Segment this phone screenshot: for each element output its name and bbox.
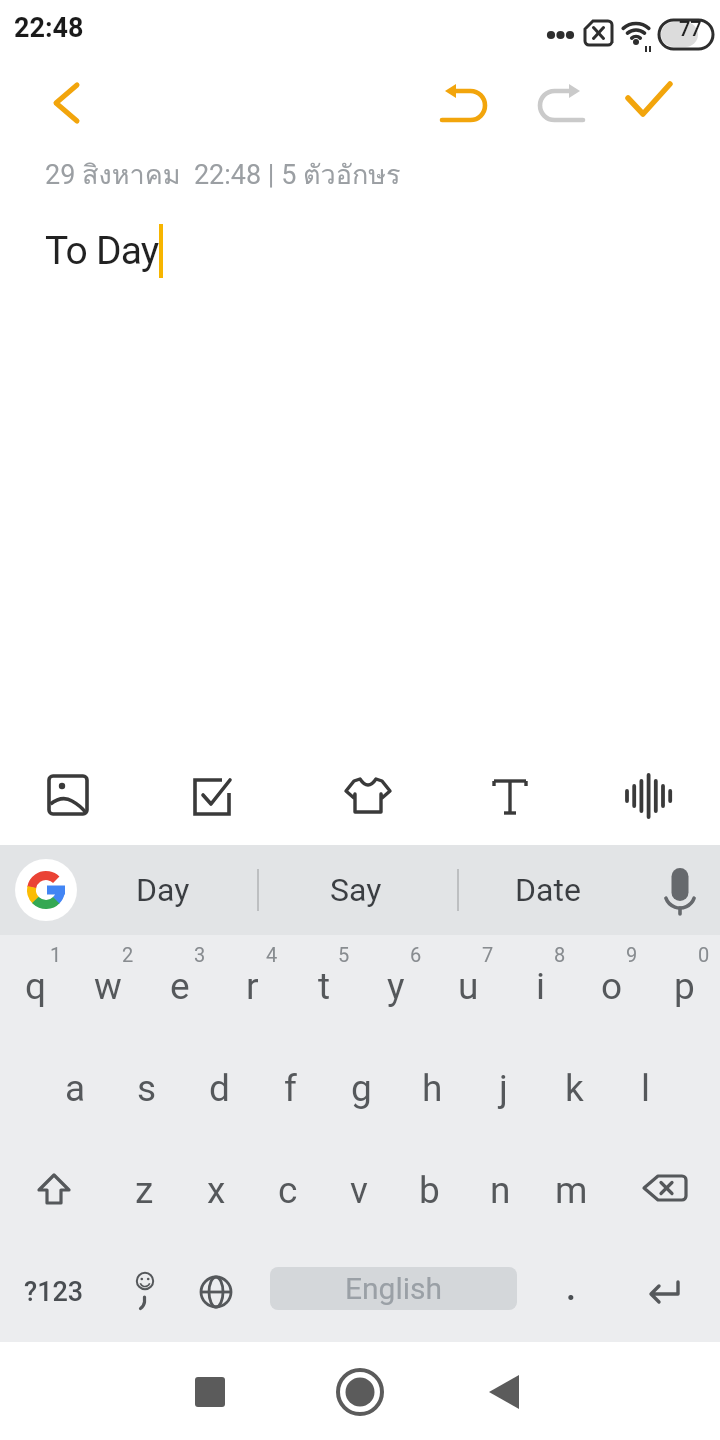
- staticText: 4: [266, 943, 278, 966]
- button[interactable]: u: [432, 935, 504, 1037]
- staticText: z: [135, 1169, 154, 1212]
- button[interactable]: o: [576, 935, 648, 1037]
- button[interactable]: [437, 64, 497, 124]
- button[interactable]: t: [288, 935, 360, 1037]
- button[interactable]: m: [536, 1139, 607, 1241]
- button[interactable]: b: [394, 1139, 465, 1241]
- staticText: 1: [50, 943, 62, 966]
- button[interactable]: ?123: [0, 1241, 108, 1342]
- staticText: r: [246, 965, 259, 1008]
- button[interactable]: k: [539, 1037, 610, 1139]
- staticText: 3: [194, 943, 206, 966]
- staticText: h: [422, 1067, 443, 1110]
- button[interactable]: l: [610, 1037, 681, 1139]
- button[interactable]: [178, 1360, 242, 1424]
- button[interactable]: [607, 1139, 720, 1241]
- staticText: i: [536, 965, 545, 1008]
- button[interactable]: Date: [468, 845, 628, 935]
- staticText: 7: [482, 943, 494, 966]
- button[interactable]: [607, 1241, 720, 1342]
- button[interactable]: [335, 762, 401, 828]
- staticText: 0: [698, 943, 710, 966]
- button[interactable]: [528, 64, 588, 124]
- staticText: 8: [554, 943, 566, 966]
- staticText: t: [318, 965, 331, 1008]
- staticText: .: [565, 1257, 578, 1311]
- staticText: a: [65, 1067, 86, 1110]
- button[interactable]: [108, 1241, 180, 1342]
- button[interactable]: Day: [83, 845, 243, 935]
- button[interactable]: p: [648, 935, 720, 1037]
- staticText: l: [641, 1067, 650, 1110]
- staticText: English: [345, 1271, 443, 1306]
- button[interactable]: d: [183, 1037, 255, 1139]
- button[interactable]: [648, 858, 712, 922]
- staticText: c: [278, 1169, 298, 1212]
- button[interactable]: q: [0, 935, 72, 1037]
- button[interactable]: n: [465, 1139, 536, 1241]
- button[interactable]: [473, 1360, 537, 1424]
- staticText: g: [351, 1067, 372, 1110]
- button[interactable]: c: [252, 1139, 323, 1241]
- staticText: x: [207, 1169, 226, 1212]
- staticText: k: [565, 1067, 584, 1110]
- button[interactable]: .: [535, 1241, 607, 1342]
- button[interactable]: [180, 1241, 252, 1342]
- button[interactable]: [615, 762, 681, 828]
- button[interactable]: [328, 1360, 392, 1424]
- staticText: 2: [122, 943, 134, 966]
- staticText: v: [350, 1169, 368, 1212]
- button[interactable]: s: [111, 1037, 183, 1139]
- staticText: 29 สิงหาคม 22:48 | 5 ตัวอักษร: [45, 153, 401, 196]
- staticText: y: [387, 965, 405, 1008]
- staticText: Day: [136, 871, 190, 909]
- button[interactable]: g: [326, 1037, 397, 1139]
- button[interactable]: English: [270, 1267, 517, 1310]
- button[interactable]: a: [39, 1037, 111, 1139]
- button[interactable]: v: [323, 1139, 394, 1241]
- staticText: w: [94, 965, 122, 1008]
- button[interactable]: x: [180, 1139, 252, 1241]
- button[interactable]: [477, 762, 543, 828]
- button[interactable]: i: [504, 935, 576, 1037]
- button[interactable]: f: [255, 1037, 326, 1139]
- staticText: m: [555, 1169, 588, 1212]
- staticText: n: [490, 1169, 511, 1212]
- button[interactable]: j: [468, 1037, 539, 1139]
- button[interactable]: [35, 762, 101, 828]
- staticText: ?123: [24, 1276, 84, 1308]
- button[interactable]: z: [108, 1139, 180, 1241]
- staticText: 9: [626, 943, 638, 966]
- staticText: Say: [330, 871, 382, 909]
- staticText: 77: [679, 17, 702, 40]
- staticText: 6: [410, 943, 422, 966]
- staticText: s: [137, 1067, 157, 1110]
- button[interactable]: [34, 72, 90, 128]
- staticText: e: [170, 965, 190, 1008]
- button[interactable]: y: [360, 935, 432, 1037]
- staticText: 22:48: [14, 12, 84, 44]
- staticText: b: [419, 1169, 440, 1212]
- button[interactable]: h: [397, 1037, 468, 1139]
- button[interactable]: [0, 1139, 108, 1241]
- staticText: 5: [338, 943, 350, 966]
- staticText: To Day: [45, 228, 159, 274]
- staticText: u: [458, 965, 479, 1008]
- staticText: Date: [515, 871, 581, 909]
- staticText: p: [674, 965, 695, 1008]
- button[interactable]: [618, 74, 678, 134]
- staticText: o: [601, 965, 623, 1008]
- button[interactable]: r: [216, 935, 288, 1037]
- button[interactable]: e: [144, 935, 216, 1037]
- button[interactable]: w: [72, 935, 144, 1037]
- staticText: q: [25, 965, 47, 1008]
- staticText: f: [284, 1067, 297, 1110]
- staticText: j: [499, 1067, 508, 1110]
- button[interactable]: [15, 859, 77, 921]
- button[interactable]: Say: [276, 845, 436, 935]
- staticText: d: [209, 1067, 230, 1110]
- button[interactable]: [177, 762, 243, 828]
